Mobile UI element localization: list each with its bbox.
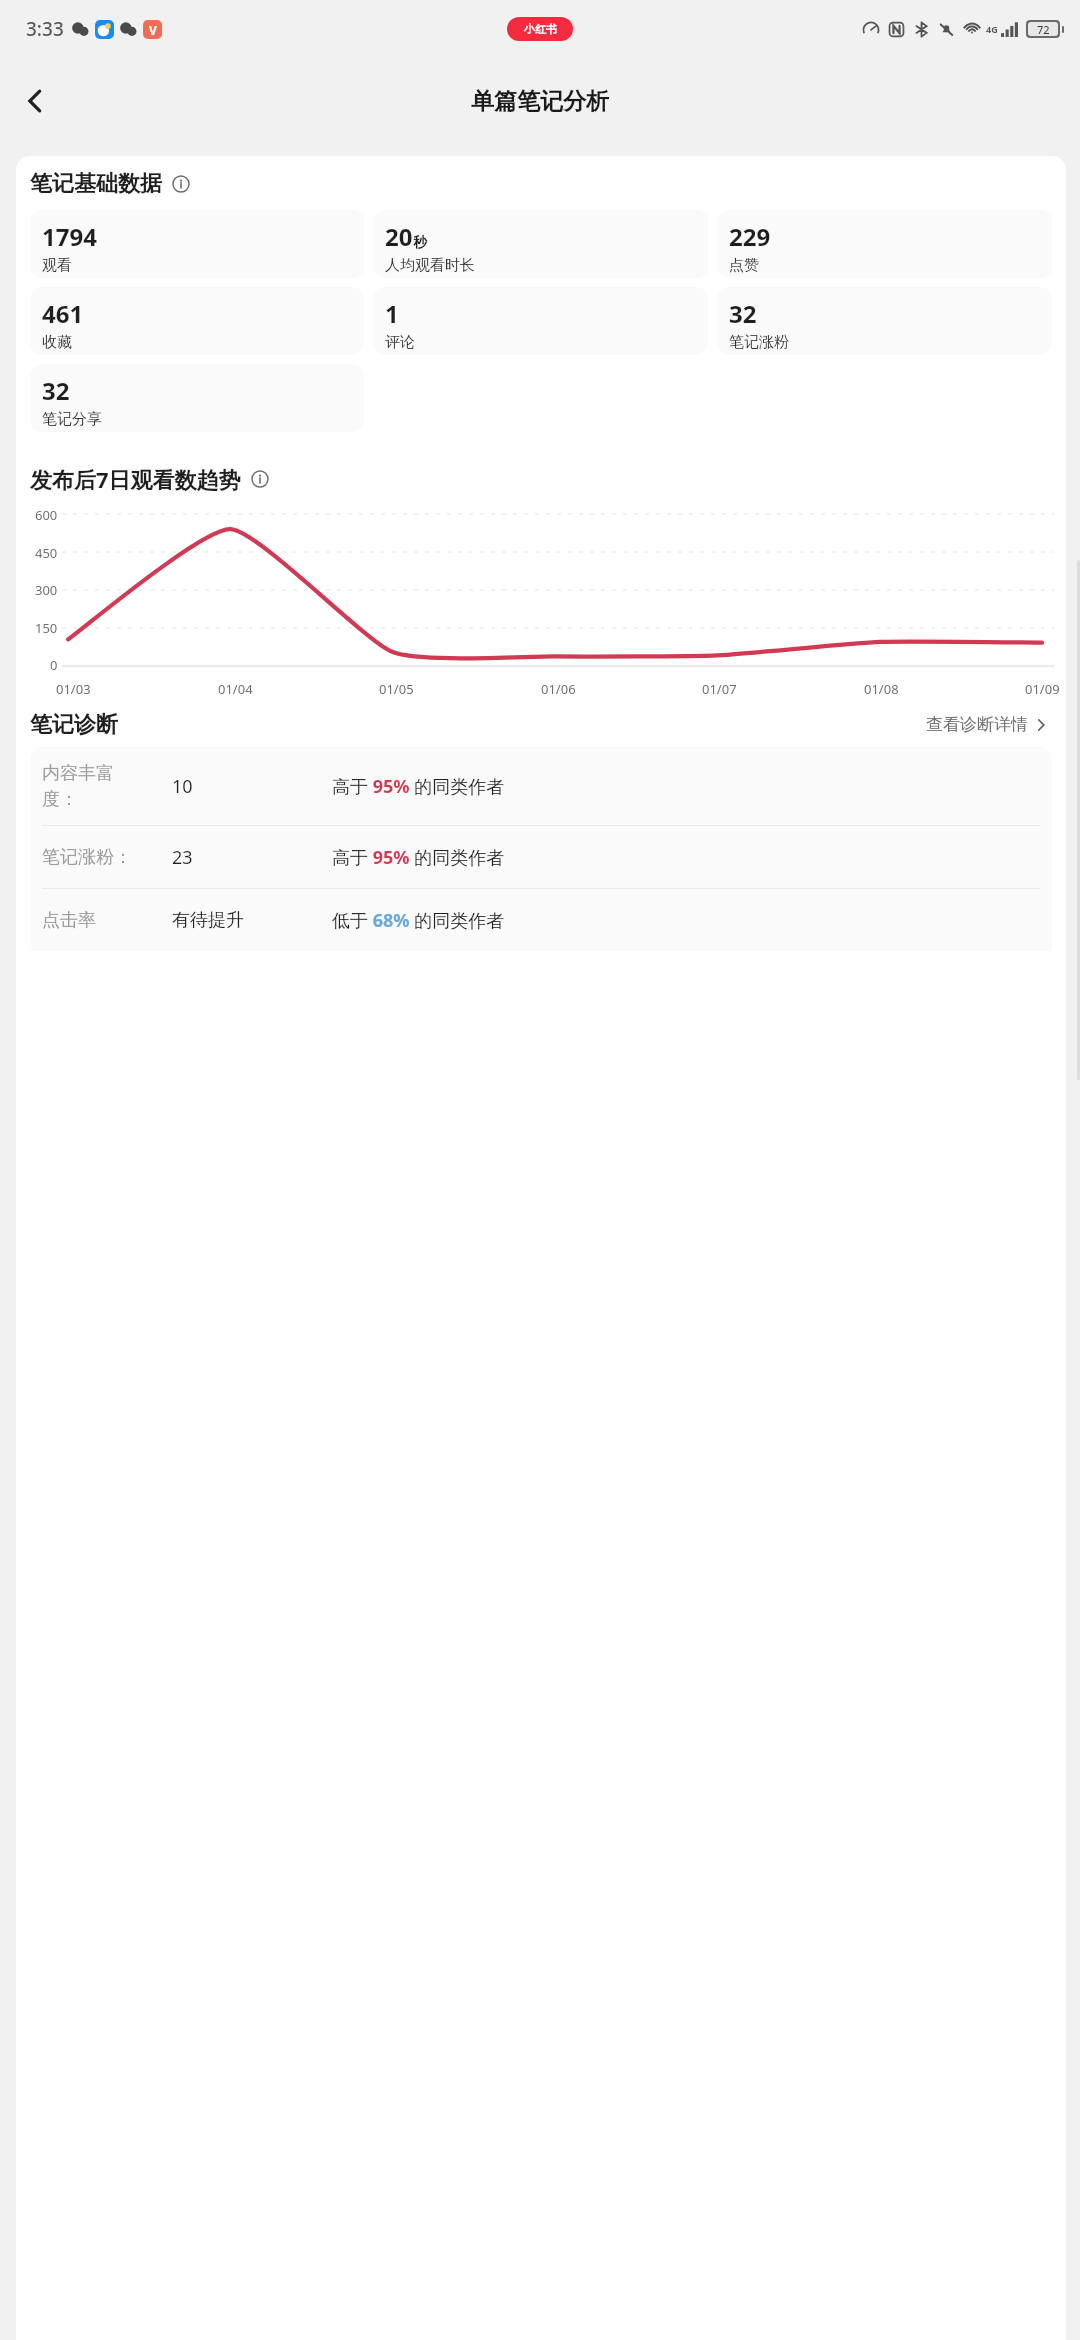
staticText: 01/04 — [218, 680, 253, 698]
staticText: 450 — [35, 544, 58, 562]
staticText: 单篇笔记分析 — [471, 87, 609, 116]
staticText: 4G — [986, 23, 998, 35]
button[interactable]: Info — [170, 173, 192, 195]
staticText: 点击率 — [42, 909, 96, 932]
button[interactable]: Info — [249, 468, 271, 490]
button[interactable]: 32 — [30, 364, 364, 432]
staticText: 01/07 — [702, 680, 737, 698]
staticText: 10 — [172, 774, 193, 799]
button[interactable]: 点击率 — [42, 889, 1040, 951]
staticText: 01/03 — [56, 680, 91, 698]
staticText: 低于 68% 的同类作者 — [332, 908, 505, 933]
staticText: 1 — [385, 297, 399, 330]
staticText: 150 — [35, 619, 58, 637]
staticText: 23 — [172, 845, 193, 870]
staticText: 小红书 — [524, 22, 557, 36]
button[interactable]: 笔记涨粉： — [42, 826, 1040, 888]
staticText: 01/06 — [541, 680, 576, 698]
staticText: 内容丰富 度： — [42, 762, 114, 811]
button[interactable]: 1794 — [30, 210, 364, 278]
staticText: 有待提升 — [172, 909, 244, 932]
staticText: 1794 — [42, 220, 97, 253]
staticText: 300 — [35, 581, 58, 599]
staticText: 笔记基础数据 — [30, 170, 162, 198]
staticText: 笔记分享 — [42, 410, 102, 429]
button[interactable]: 20 — [373, 210, 708, 278]
staticText: 72 — [1037, 22, 1050, 36]
staticText: 32 — [729, 297, 757, 330]
staticText: 600 — [35, 506, 58, 524]
staticText: 229 — [729, 220, 771, 253]
button[interactable]: 内容丰富 度： — [42, 747, 1040, 825]
button[interactable]: 32 — [717, 287, 1052, 355]
staticText: 461 — [42, 297, 84, 330]
button[interactable]: 229 — [717, 210, 1052, 278]
button[interactable]: 461 — [30, 287, 364, 355]
button[interactable]: Back — [8, 74, 62, 128]
button[interactable]: 查看诊断详情 — [922, 710, 1052, 739]
staticText: 发布后7日观看数趋势 — [30, 464, 241, 494]
staticText: 笔记涨粉 — [729, 333, 789, 352]
staticText: 人均观看时长 — [385, 256, 475, 275]
staticText: 秒 — [413, 234, 427, 252]
staticText: V — [149, 22, 157, 38]
staticText: 观看 — [42, 256, 72, 275]
button[interactable]: 1 — [373, 287, 708, 355]
staticText: 01/08 — [864, 680, 899, 698]
staticText: 高于 95% 的同类作者 — [332, 774, 505, 799]
staticText: 01/09 — [1025, 680, 1060, 698]
staticText: 笔记涨粉： — [42, 846, 132, 869]
staticText: 收藏 — [42, 333, 72, 352]
staticText: 笔记诊断 — [30, 711, 118, 739]
staticText: 20 — [385, 220, 413, 253]
staticText: 查看诊断详情 — [926, 714, 1028, 735]
staticText: 32 — [42, 374, 70, 407]
staticText: 评论 — [385, 333, 415, 352]
staticText: 点赞 — [729, 256, 759, 275]
staticText: 0 — [50, 656, 58, 674]
staticText: 高于 95% 的同类作者 — [332, 845, 505, 870]
staticText: 3:33 — [26, 16, 64, 42]
staticText: 01/05 — [379, 680, 414, 698]
